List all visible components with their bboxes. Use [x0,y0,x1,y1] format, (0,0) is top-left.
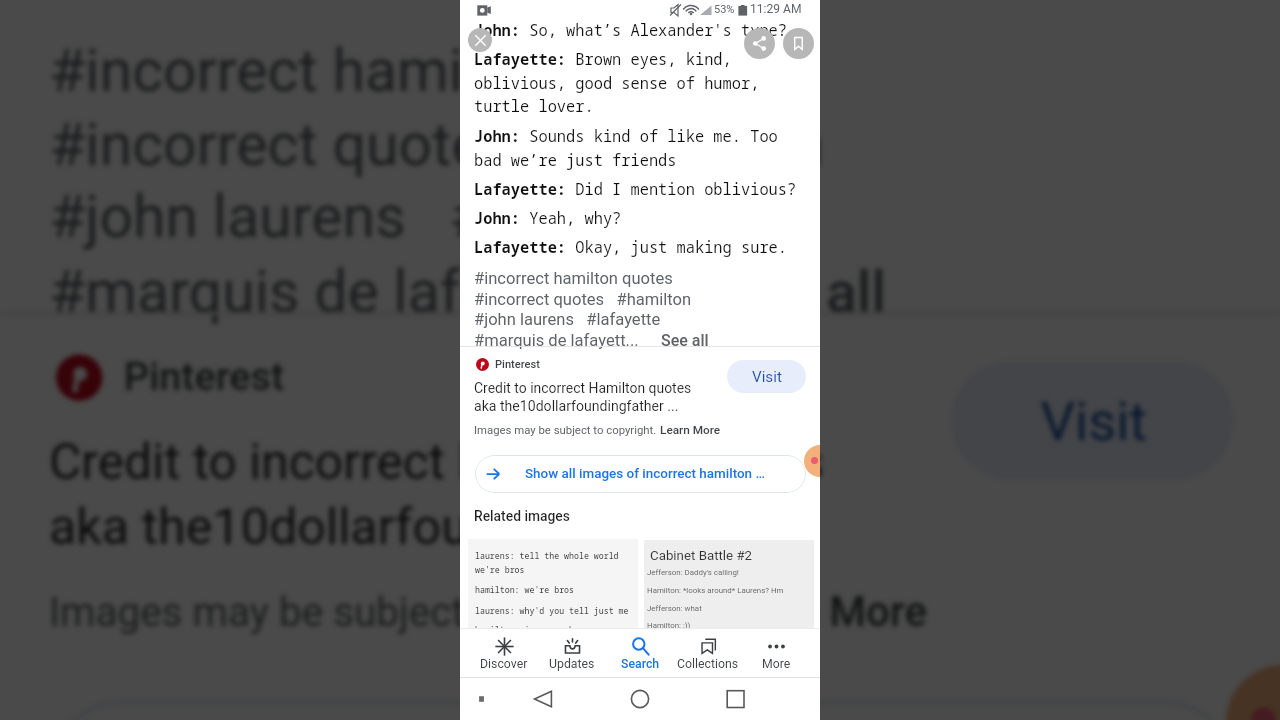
staticText: Credit to incorrect Hamilton quotes [474,380,692,396]
staticText: Updates [549,657,595,671]
staticText: oblivious, good sense of humor, [474,73,760,94]
staticText: Search [621,657,660,671]
staticText: #incorrect hamilton quotes [474,269,673,288]
button[interactable]: Share [744,28,775,59]
staticText: turtle lover. [474,96,594,117]
staticText: Pinterest [124,354,284,401]
staticText: Learn More [660,423,721,437]
staticText: laurens: why'd you tell just me [475,605,629,616]
button[interactable]: Visit [727,360,806,393]
staticText: #marquis de lafayett... [474,331,639,350]
staticText: Visit [1041,390,1148,454]
staticText: Collections [677,657,739,671]
staticText: Jefferson: what [647,604,702,613]
button[interactable]: Updates [538,628,606,678]
staticText: 11:29 AM [750,2,802,16]
staticText: Lafayette: Okay, just making sure. [474,237,788,258]
staticText: Hamilton: :)) [647,621,691,630]
staticText: #incorrect quotes #hamilton [49,112,826,180]
button[interactable]: More [742,628,810,678]
staticText: Credit to incorrect Hamilton quotes [49,433,826,490]
staticText: #marquis de lafayett... [49,258,637,326]
staticText: 53% [714,3,735,16]
staticText: Cabinet Battle #2 [650,548,753,564]
staticText: laurens: tell the whole world [475,550,619,561]
staticText: Lafayette: Did I mention oblivious? [474,179,797,200]
staticText: Related images [474,508,570,524]
staticText: aka the10dollarfoundingfather ... [49,497,780,558]
staticText: Jefferson: Daddy's calling! [647,568,739,577]
staticText: John: So, what’s Alexander's type? [474,20,788,41]
staticText: #john laurens #lafayette [474,310,661,329]
staticText: #incorrect quotes #hamilton [474,290,692,309]
staticText: See all [716,258,887,326]
staticText: Visit [752,368,782,386]
staticText: Lafayette: Brown eyes, kind, [474,49,732,70]
staticText: #john laurens #lafayette [49,183,716,251]
staticText: bad we’re just friends [474,150,677,171]
staticText: See all [661,331,709,350]
button[interactable]: Discover [470,628,538,678]
staticText: we're bros [475,564,525,575]
staticText: Hamilton: *looks around* Laurens? Hm [647,586,784,595]
staticText: John: Yeah, why? [474,208,622,229]
staticText: aka the10dollarfoundingfather ... [474,398,679,415]
button[interactable]: Collections [674,628,742,678]
staticText: Learn More [712,586,930,636]
button[interactable]: Bookmark [783,28,814,59]
staticText: More [762,657,791,671]
staticText: Pinterest [495,358,540,371]
staticText: Images may be subject to copyright. [474,423,660,436]
staticText: Discover [480,657,528,671]
staticText: hamilton: we're bros [475,584,574,595]
staticText: Images may be subject to copyright. [49,586,712,633]
staticText: #incorrect hamilton quotes [49,37,759,105]
button[interactable]: Search [606,628,674,678]
staticText: John: Sounds kind of like me. Too [474,126,778,147]
button[interactable]: Show all images of incorrect hamilton … [475,455,806,493]
staticText: Show all images of incorrect hamilton … [525,466,765,482]
button[interactable]: Close [468,28,492,52]
staticText: hamilton: i was so happy [475,624,594,630]
